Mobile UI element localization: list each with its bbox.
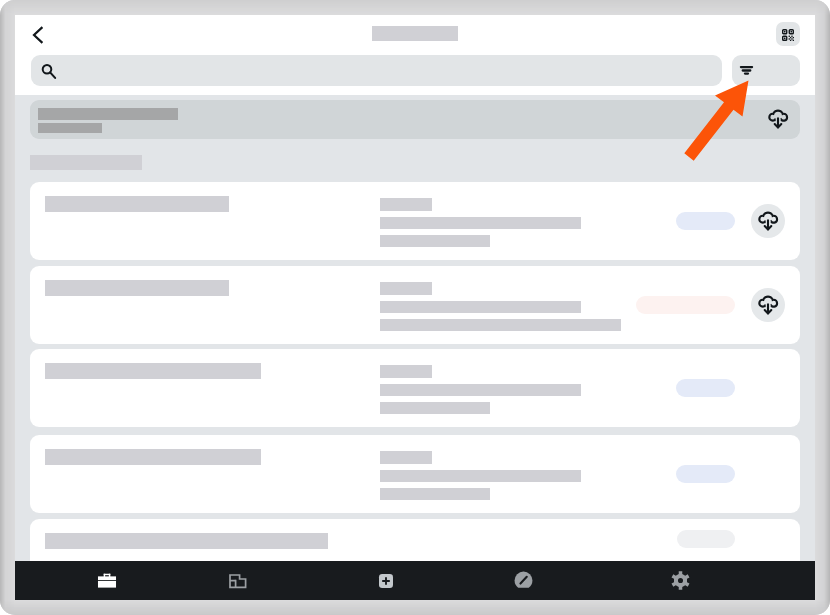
button[interactable]: Download bbox=[751, 204, 785, 238]
button[interactable] bbox=[30, 349, 800, 427]
button[interactable]: Download all bbox=[30, 100, 800, 139]
button[interactable]: Filter bbox=[732, 55, 800, 86]
button[interactable]: Scan QR code bbox=[776, 22, 800, 46]
button[interactable]: Diagnostics bbox=[496, 561, 551, 600]
button[interactable]: Settings bbox=[654, 561, 707, 600]
button[interactable]: Download bbox=[30, 182, 800, 260]
button[interactable]: Tools bbox=[79, 561, 135, 600]
button[interactable]: Plans bbox=[211, 561, 265, 600]
button[interactable] bbox=[30, 435, 800, 513]
button[interactable]: Download bbox=[30, 266, 800, 344]
button[interactable]: Back bbox=[24, 21, 52, 49]
button[interactable]: Download bbox=[751, 288, 785, 322]
button[interactable] bbox=[30, 519, 800, 561]
button[interactable]: Download all bbox=[760, 101, 796, 137]
button[interactable]: Add bbox=[359, 561, 413, 600]
button[interactable] bbox=[31, 55, 722, 86]
